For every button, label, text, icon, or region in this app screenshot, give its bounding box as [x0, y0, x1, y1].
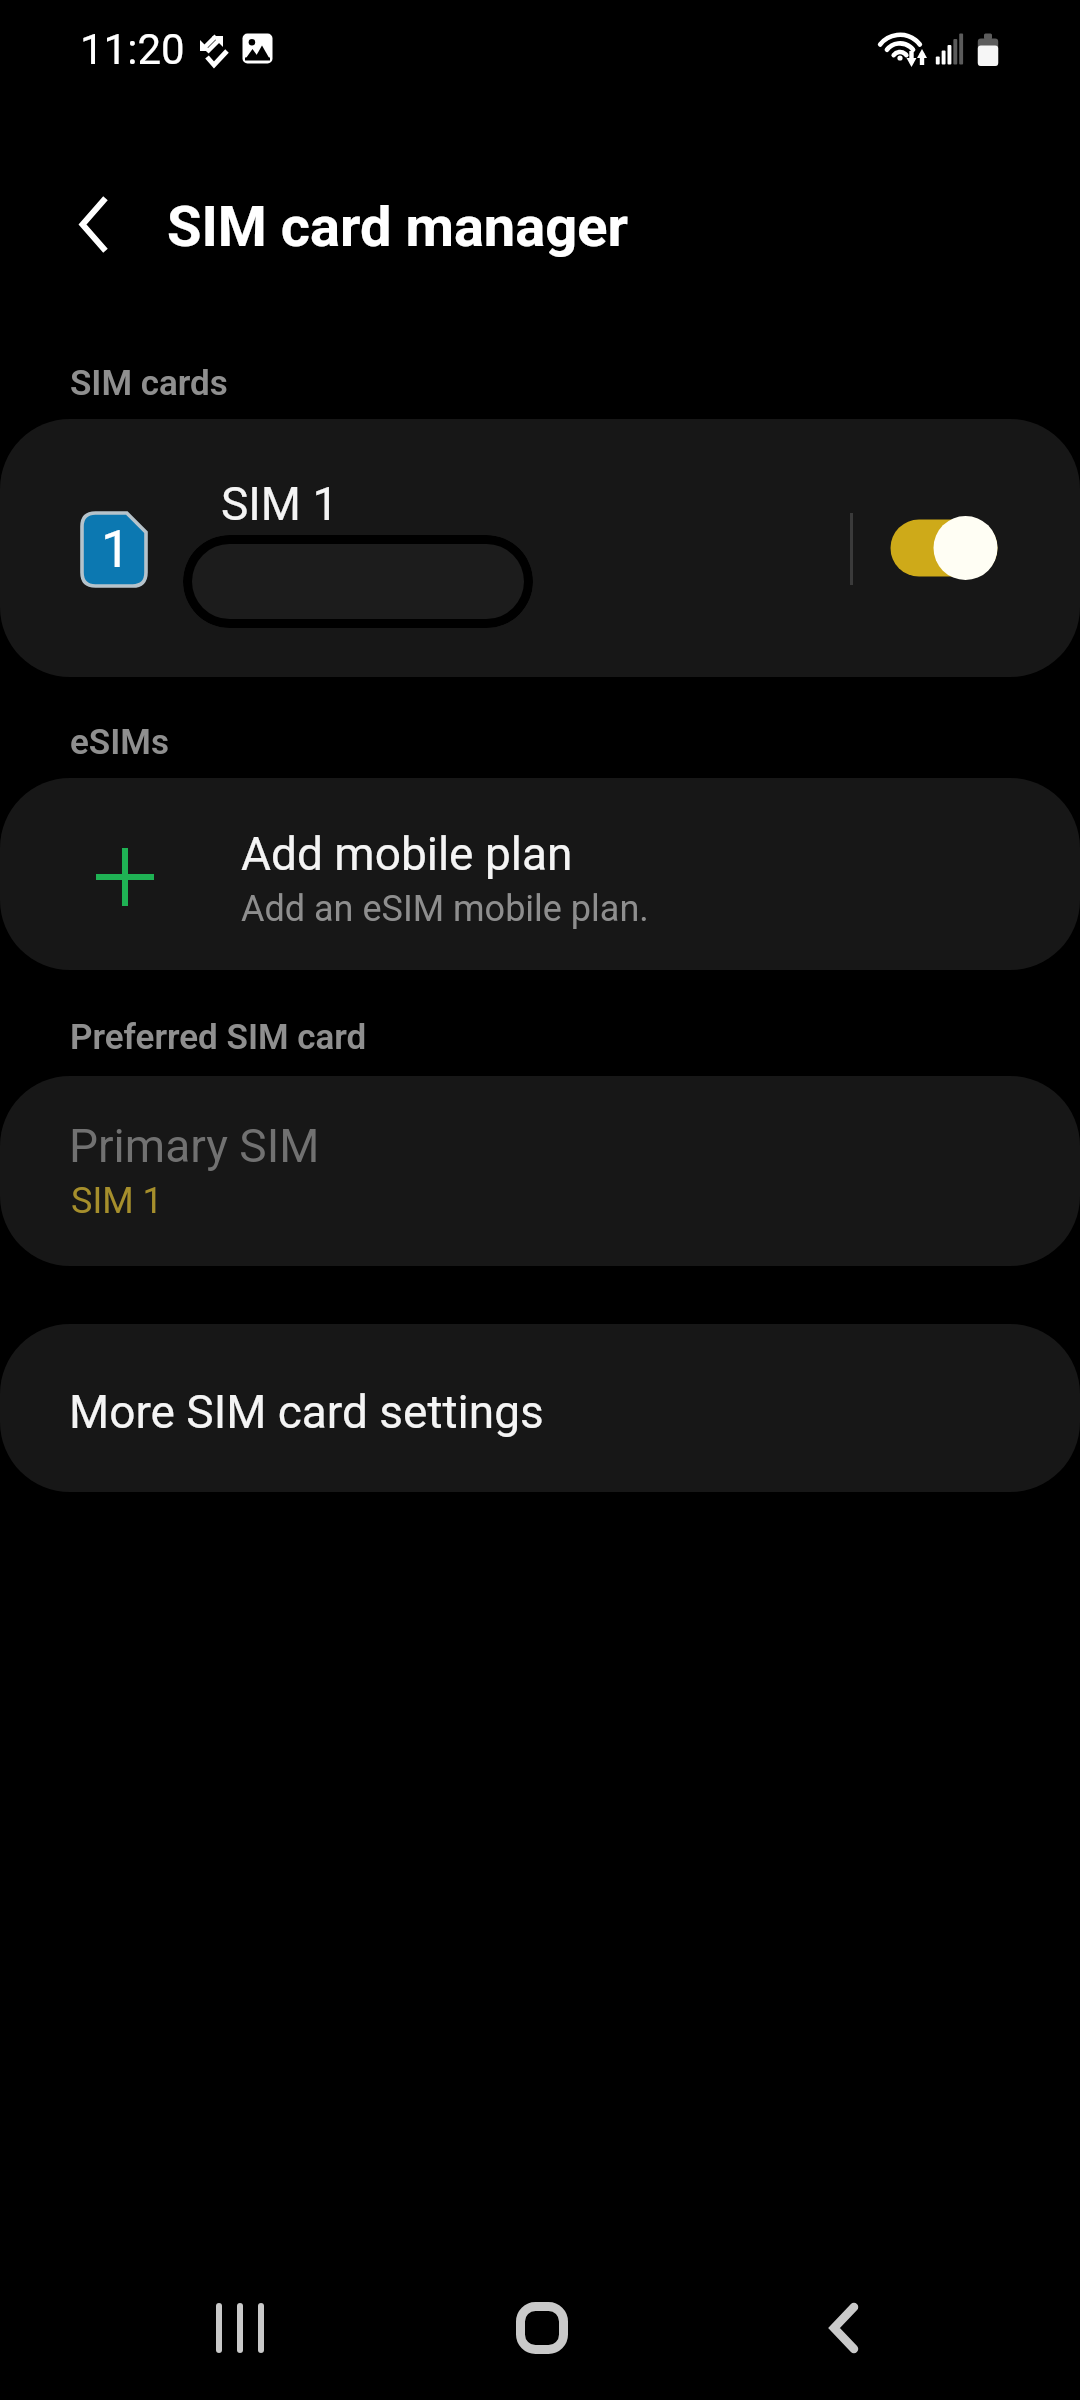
- staticText: eSIMs: [70, 722, 169, 763]
- button[interactable]: Home: [467, 2253, 617, 2400]
- button[interactable]: More SIM card settings: [0, 1324, 1080, 1492]
- staticText: 1: [101, 519, 131, 580]
- staticText: SIM card manager: [167, 194, 628, 260]
- button[interactable]: Back: [769, 2253, 919, 2400]
- staticText: SIM cards: [70, 363, 228, 404]
- staticText: Add an eSIM mobile plan.: [241, 888, 649, 930]
- button[interactable]: Navigate up: [45, 176, 141, 272]
- button[interactable]: Recent apps: [165, 2253, 315, 2400]
- staticText: More SIM card settings: [69, 1385, 544, 1439]
- staticText: Primary SIM: [69, 1119, 320, 1173]
- staticText: 11:20: [80, 25, 185, 74]
- button[interactable]: 1: [0, 419, 1080, 677]
- button[interactable]: Turn off SIM 1: [858, 501, 1030, 595]
- button[interactable]: Add mobile plan: [0, 778, 1080, 970]
- staticText: Preferred SIM card: [70, 1017, 367, 1058]
- button[interactable]: Primary SIM: [0, 1076, 1080, 1266]
- staticText: Add mobile plan: [241, 827, 573, 881]
- button[interactable]: Edit SIM 1 phone number: [183, 535, 533, 628]
- staticText: SIM 1: [71, 1180, 163, 1222]
- staticText: SIM 1: [221, 477, 339, 531]
